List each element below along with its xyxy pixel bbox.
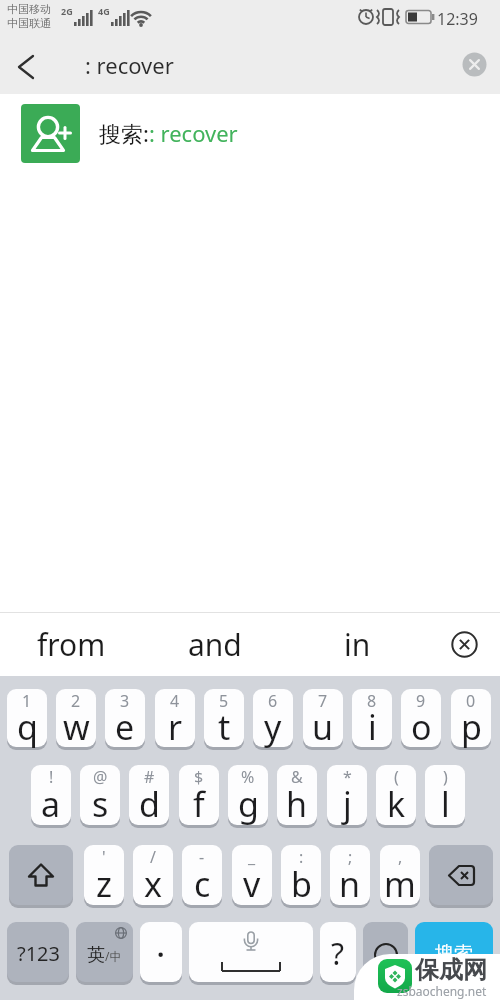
staticText: _	[248, 846, 256, 868]
staticText: 6	[268, 690, 278, 712]
staticText: ?	[331, 933, 345, 974]
button[interactable]: !	[31, 765, 71, 828]
button[interactable]: ;	[330, 845, 370, 908]
staticText: 英/中	[87, 944, 122, 967]
button[interactable]: :	[281, 845, 321, 908]
button[interactable]: &	[277, 765, 317, 828]
staticText: t	[218, 704, 231, 750]
staticText: e	[115, 704, 135, 750]
staticText: :	[299, 846, 304, 868]
button[interactable]: _	[232, 845, 272, 908]
staticText: : recover	[85, 50, 174, 80]
button[interactable]	[363, 922, 408, 985]
staticText: ·	[157, 936, 165, 971]
button[interactable]: 搜索	[415, 922, 493, 985]
button[interactable]	[9, 845, 73, 908]
button[interactable]: %	[228, 765, 268, 828]
button[interactable]: ·	[140, 922, 182, 985]
staticText: o	[411, 704, 432, 750]
staticText: x	[144, 861, 162, 907]
staticText: 中国联通	[7, 16, 51, 30]
button[interactable]: 9	[401, 689, 441, 750]
button[interactable]: )	[425, 765, 465, 828]
staticText: 2G	[61, 5, 73, 17]
staticText: 9	[416, 690, 426, 712]
staticText: q	[17, 704, 38, 750]
staticText: s	[92, 781, 109, 827]
button[interactable]: 1	[7, 689, 47, 750]
button[interactable]	[189, 922, 313, 985]
staticText: 3	[120, 690, 130, 712]
button[interactable]: 搜索:: recover	[0, 94, 500, 172]
staticText: c	[194, 861, 211, 907]
staticText: )	[443, 766, 448, 788]
button[interactable]	[429, 845, 493, 908]
button[interactable]: /	[133, 845, 173, 908]
button[interactable]	[8, 49, 44, 85]
staticText: *	[343, 766, 352, 788]
staticText: '	[102, 846, 106, 868]
staticText: (	[394, 766, 399, 788]
button[interactable]	[429, 613, 500, 676]
staticText: #	[144, 766, 155, 788]
button[interactable]: 6	[253, 689, 293, 750]
staticText: n	[339, 861, 361, 907]
button[interactable]: from	[0, 613, 143, 676]
button[interactable]: #	[129, 765, 169, 828]
staticText: ;	[348, 846, 353, 868]
button[interactable]: -	[182, 845, 222, 908]
staticText: 0	[466, 690, 476, 712]
button[interactable]: 2	[56, 689, 96, 750]
button[interactable]: *	[327, 765, 367, 828]
staticText: l	[441, 781, 450, 827]
button[interactable]: ?	[320, 922, 356, 985]
staticText: 中国移动	[7, 2, 51, 16]
staticText: b	[291, 861, 312, 907]
staticText: zsbaocheng.net	[397, 983, 487, 999]
button[interactable]: and	[143, 613, 286, 676]
staticText: z	[96, 861, 112, 907]
staticText: v	[243, 861, 261, 907]
staticText: -	[199, 846, 205, 868]
button[interactable]: ,	[380, 845, 420, 908]
staticText: j	[343, 781, 352, 827]
button[interactable]: 英/中	[76, 922, 133, 985]
button[interactable]: 4	[155, 689, 195, 750]
button[interactable]: 5	[204, 689, 244, 750]
staticText: 搜索	[435, 942, 473, 966]
button[interactable]: 0	[451, 689, 491, 750]
staticText: k	[387, 781, 406, 827]
button[interactable]: ?123	[7, 922, 69, 985]
button[interactable]	[461, 51, 488, 78]
staticText: 搜索:: recover	[99, 118, 238, 148]
button[interactable]: '	[84, 845, 124, 908]
staticText: u	[312, 704, 334, 750]
staticText: 5	[219, 690, 229, 712]
button[interactable]: in	[286, 613, 429, 676]
staticText: 保成网	[415, 955, 487, 985]
button[interactable]: 3	[105, 689, 145, 750]
staticText: y	[264, 704, 282, 750]
staticText: and	[188, 624, 242, 665]
staticText: &	[291, 766, 303, 788]
staticText: 8	[367, 690, 377, 712]
staticText: ?123	[17, 940, 60, 967]
staticText: @	[93, 766, 108, 788]
staticText: m	[384, 861, 416, 907]
staticText: 1	[22, 690, 32, 712]
staticText: f	[193, 781, 205, 827]
staticText: $	[194, 766, 204, 788]
button[interactable]: (	[376, 765, 416, 828]
button[interactable]: 8	[352, 689, 392, 750]
staticText: /	[150, 846, 156, 868]
staticText: ,	[398, 846, 403, 868]
staticText: d	[139, 781, 160, 827]
button[interactable]: 7	[303, 689, 343, 750]
staticText: p	[461, 704, 482, 750]
staticText: g	[238, 781, 259, 827]
staticText: 2	[71, 690, 81, 712]
button[interactable]: @	[80, 765, 120, 828]
staticText: i	[368, 704, 377, 750]
staticText: from	[37, 624, 106, 665]
button[interactable]: $	[179, 765, 219, 828]
